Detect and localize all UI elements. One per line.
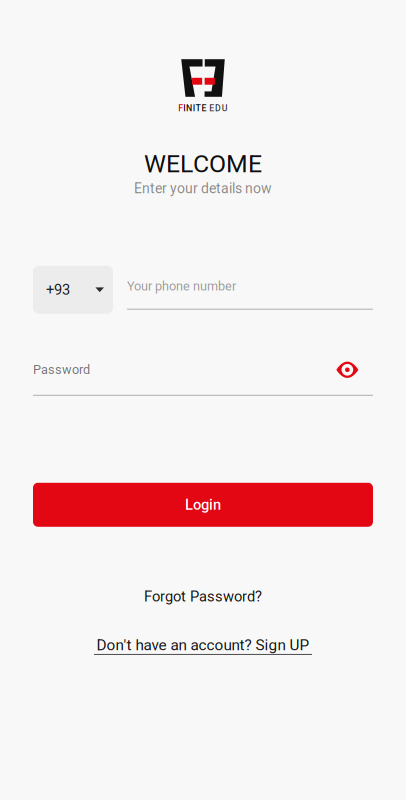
staticText: EDU — [209, 103, 228, 113]
button[interactable]: +93 — [33, 266, 113, 314]
staticText: Login — [185, 496, 221, 513]
staticText: Forgot Password? — [144, 588, 262, 605]
staticText: Your phone number — [127, 279, 236, 294]
button[interactable]: Don't have an account? Sign UP — [94, 636, 312, 655]
staticText: WELCOME — [144, 149, 262, 178]
button[interactable]: Login — [33, 483, 373, 527]
staticText: INITE — [183, 103, 209, 113]
staticText: Password — [33, 362, 90, 377]
staticText: Enter your details now — [134, 180, 272, 197]
button[interactable]: Forgot Password? — [144, 588, 262, 605]
button[interactable]: Show password — [330, 359, 373, 380]
staticText: F — [178, 103, 183, 113]
staticText: Don't have an account? Sign UP — [96, 636, 309, 654]
staticText: +93 — [46, 281, 70, 298]
